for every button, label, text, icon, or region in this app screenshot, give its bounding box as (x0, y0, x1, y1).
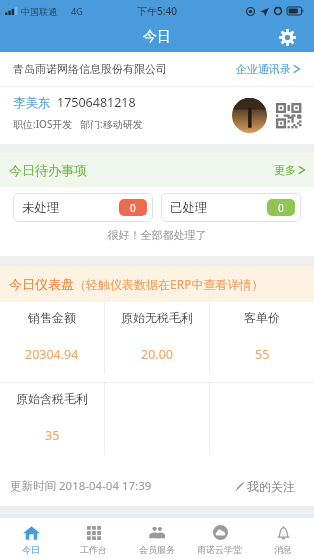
button[interactable]: 原始含税毛利 (0, 383, 104, 466)
staticText: 17506481218 (57, 94, 136, 111)
staticText: 今日待办事项 (9, 162, 87, 178)
staticText: 雨诺云学堂 (197, 544, 242, 555)
staticText: 李美东 (13, 95, 51, 111)
staticText: 35 (45, 427, 60, 444)
button[interactable]: 已处理 (161, 193, 301, 222)
button[interactable]: 销售金额 (0, 302, 104, 382)
button[interactable]: 未处理 (13, 193, 153, 222)
staticText: 4G (71, 5, 83, 17)
button[interactable]: Avatar (232, 98, 267, 133)
staticText: 未处理 (22, 200, 60, 216)
button[interactable]: 客单价 (210, 302, 314, 382)
staticText: 更新时间 2018-04-04 17:39 (10, 478, 152, 494)
staticText: 原始无税毛利 (121, 310, 193, 325)
button[interactable]: 原始无税毛利 (105, 302, 209, 382)
button[interactable]: 消息 (251, 518, 314, 559)
button[interactable]: QR code (276, 103, 301, 128)
staticText: 今日 (22, 544, 40, 555)
staticText: 原始含税毛利 (16, 391, 88, 406)
staticText: 更多 (274, 163, 296, 177)
staticText: 下午5:40 (137, 4, 177, 18)
staticText: 青岛雨诺网络信息股份有限公司 (13, 62, 167, 76)
button[interactable]: Settings (274, 24, 300, 50)
staticText: 部门:移动研发 (80, 117, 143, 131)
staticText: 今日 (143, 28, 171, 46)
staticText: 20304.94 (25, 346, 79, 363)
button[interactable]: 会员服务 (125, 518, 188, 559)
staticText: 55 (255, 346, 270, 363)
button[interactable]: 我的关注 (235, 479, 295, 494)
button[interactable]: 雨诺云学堂 (188, 518, 251, 559)
staticText: 已处理 (170, 200, 208, 216)
staticText: 消息 (274, 544, 292, 555)
staticText: 20.00 (141, 346, 173, 363)
staticText: 中国联通 (21, 6, 57, 17)
staticText: 会员服务 (139, 544, 175, 555)
button[interactable]: 青岛雨诺网络信息股份有限公司 (0, 52, 314, 86)
staticText: （轻触仪表数据在ERP中查看详情） (74, 276, 264, 292)
button[interactable]: 工作台 (62, 518, 125, 559)
staticText: 0 (278, 201, 284, 215)
staticText: 我的关注 (247, 479, 295, 494)
staticText: 工作台 (80, 544, 107, 555)
button[interactable]: 更多 (274, 163, 306, 177)
staticText: 今日仪表盘 (9, 276, 74, 292)
staticText: 企业通讯录 (236, 62, 291, 76)
staticText: 很好！全部都处理了 (0, 228, 314, 242)
staticText: 职位:IOS开发 (13, 117, 73, 131)
button[interactable]: 今日 (0, 518, 62, 559)
staticText: 销售金额 (28, 310, 76, 325)
staticText: 0 (130, 201, 136, 215)
staticText: 客单价 (244, 310, 280, 325)
